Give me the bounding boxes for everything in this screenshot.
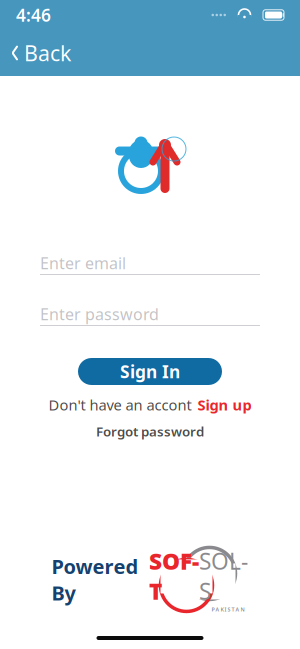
staticText: Sign up [197,395,251,414]
staticText: Sign In [120,360,180,383]
staticText: SOFT [149,546,199,606]
staticText: SOLS [199,546,248,606]
staticText: P A K I S T A N [211,606,244,613]
staticText: Enter email [40,252,126,274]
button[interactable]: Forgot password [96,422,204,440]
button[interactable]: Enter email [40,252,260,275]
staticText: Back [24,39,71,67]
staticText: Powered By [51,553,138,606]
staticText: Forgot password [96,422,204,440]
button[interactable]: Sign In [78,358,222,385]
button[interactable]: Sign up [197,395,251,414]
staticText: Don't have an accont [48,395,191,414]
button[interactable]: Enter password [40,303,260,326]
staticText: Enter password [40,303,159,325]
staticText: 4:46 [16,3,51,26]
button[interactable]: Back [0,31,81,75]
